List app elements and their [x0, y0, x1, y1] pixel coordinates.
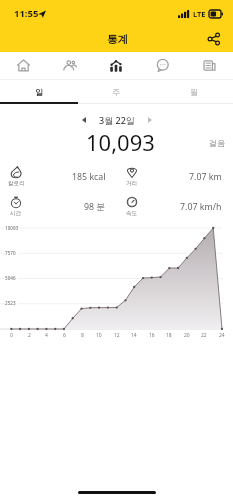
button[interactable]: Statistics	[92, 52, 139, 79]
button[interactable]: Home	[0, 52, 46, 79]
staticText: 18	[166, 332, 172, 339]
staticText: 속도	[126, 210, 138, 217]
staticText: 0	[10, 332, 13, 339]
button[interactable]: Next day	[142, 112, 158, 128]
button[interactable]: 시간	[0, 192, 116, 222]
staticText: 주	[112, 87, 120, 97]
button[interactable]: 칼로리	[0, 162, 116, 192]
staticText: 월	[190, 87, 198, 97]
button[interactable]: 일	[0, 80, 77, 104]
staticText: 4	[45, 332, 48, 339]
staticText: 7.07 km/h	[180, 201, 222, 213]
staticText: 2	[28, 332, 31, 339]
button[interactable]: Share	[203, 28, 225, 50]
staticText: 칼로리	[8, 180, 25, 187]
staticText: 거리	[126, 180, 138, 187]
staticText: 22	[201, 332, 207, 339]
button[interactable]: Chat	[139, 52, 186, 79]
button[interactable]: News	[186, 52, 233, 79]
staticText: 5046	[5, 275, 16, 281]
staticText: 12	[114, 332, 120, 339]
staticText: LTE	[193, 9, 206, 19]
staticText: 10,093	[86, 127, 155, 157]
staticText: 7.07 km	[189, 171, 222, 183]
staticText: 20	[184, 332, 190, 339]
staticText: 10	[96, 332, 102, 339]
staticText: 8	[81, 332, 84, 339]
staticText: 98 분	[84, 201, 106, 213]
button[interactable]: 속도	[116, 192, 233, 222]
staticText: 10093	[5, 225, 19, 231]
staticText: 걸음	[209, 138, 225, 148]
button[interactable]: 주	[77, 80, 155, 104]
button[interactable]: Friends	[46, 52, 92, 79]
staticText: 185 kcal	[72, 171, 106, 183]
button[interactable]: Previous day	[76, 112, 92, 128]
staticText: 통계	[107, 33, 129, 46]
staticText: 2523	[5, 300, 16, 306]
staticText: 일	[35, 87, 43, 97]
staticText: 6	[63, 332, 66, 339]
staticText: 3월 22일	[99, 114, 135, 126]
staticText: 11:55	[14, 7, 39, 20]
staticText: 14	[131, 332, 137, 339]
staticText: 시간	[10, 210, 22, 217]
staticText: 24	[219, 332, 225, 339]
staticText: 16	[149, 332, 155, 339]
button[interactable]: 월	[155, 80, 233, 104]
button[interactable]: 거리	[116, 162, 233, 192]
staticText: 7570	[5, 250, 16, 256]
